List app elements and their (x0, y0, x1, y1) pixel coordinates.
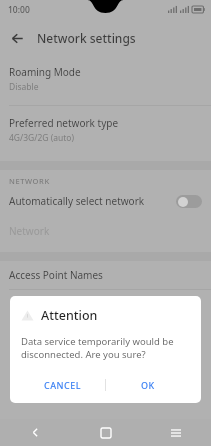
button[interactable]: CANCEL (21, 374, 105, 396)
button[interactable]: Roaming Mode (0, 56, 211, 101)
button[interactable]: Recents (141, 419, 211, 446)
staticText: Roaming Mode (9, 65, 81, 79)
button[interactable]: Automatically select network toggle (176, 195, 202, 208)
button[interactable]: Preferred network type (0, 106, 211, 152)
staticText: Preferred network type (9, 116, 119, 130)
staticText: Network settings (37, 30, 136, 46)
staticText: Access Point Names (9, 268, 103, 282)
button[interactable]: Back (0, 419, 71, 446)
button[interactable]: Access Point Names (0, 261, 211, 289)
staticText: NETWORK (9, 176, 50, 186)
staticText: Attention (41, 307, 98, 324)
button[interactable]: Back (0, 21, 34, 55)
staticText: Automatically select network (9, 194, 176, 208)
staticText: OK (141, 379, 155, 391)
staticText: 4G/3G/2G (auto) (9, 132, 75, 144)
staticText: Data service temporarily would be discon… (21, 335, 190, 361)
staticText: 10:00 (8, 4, 30, 16)
button[interactable]: Home (71, 419, 141, 446)
button[interactable]: Automatically select network (0, 186, 211, 216)
button[interactable]: OK (106, 374, 190, 396)
staticText: Network (9, 224, 50, 238)
staticText: Disable (9, 81, 39, 93)
staticText: CANCEL (44, 379, 82, 391)
